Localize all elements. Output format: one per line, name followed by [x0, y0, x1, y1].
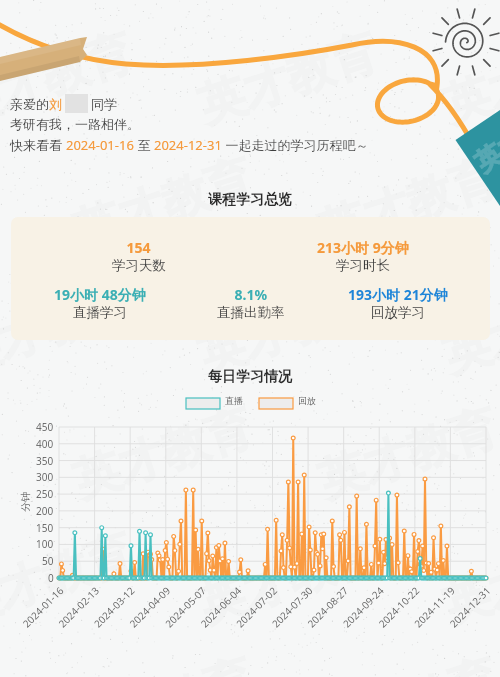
button[interactable]	[0, 0, 500, 677]
